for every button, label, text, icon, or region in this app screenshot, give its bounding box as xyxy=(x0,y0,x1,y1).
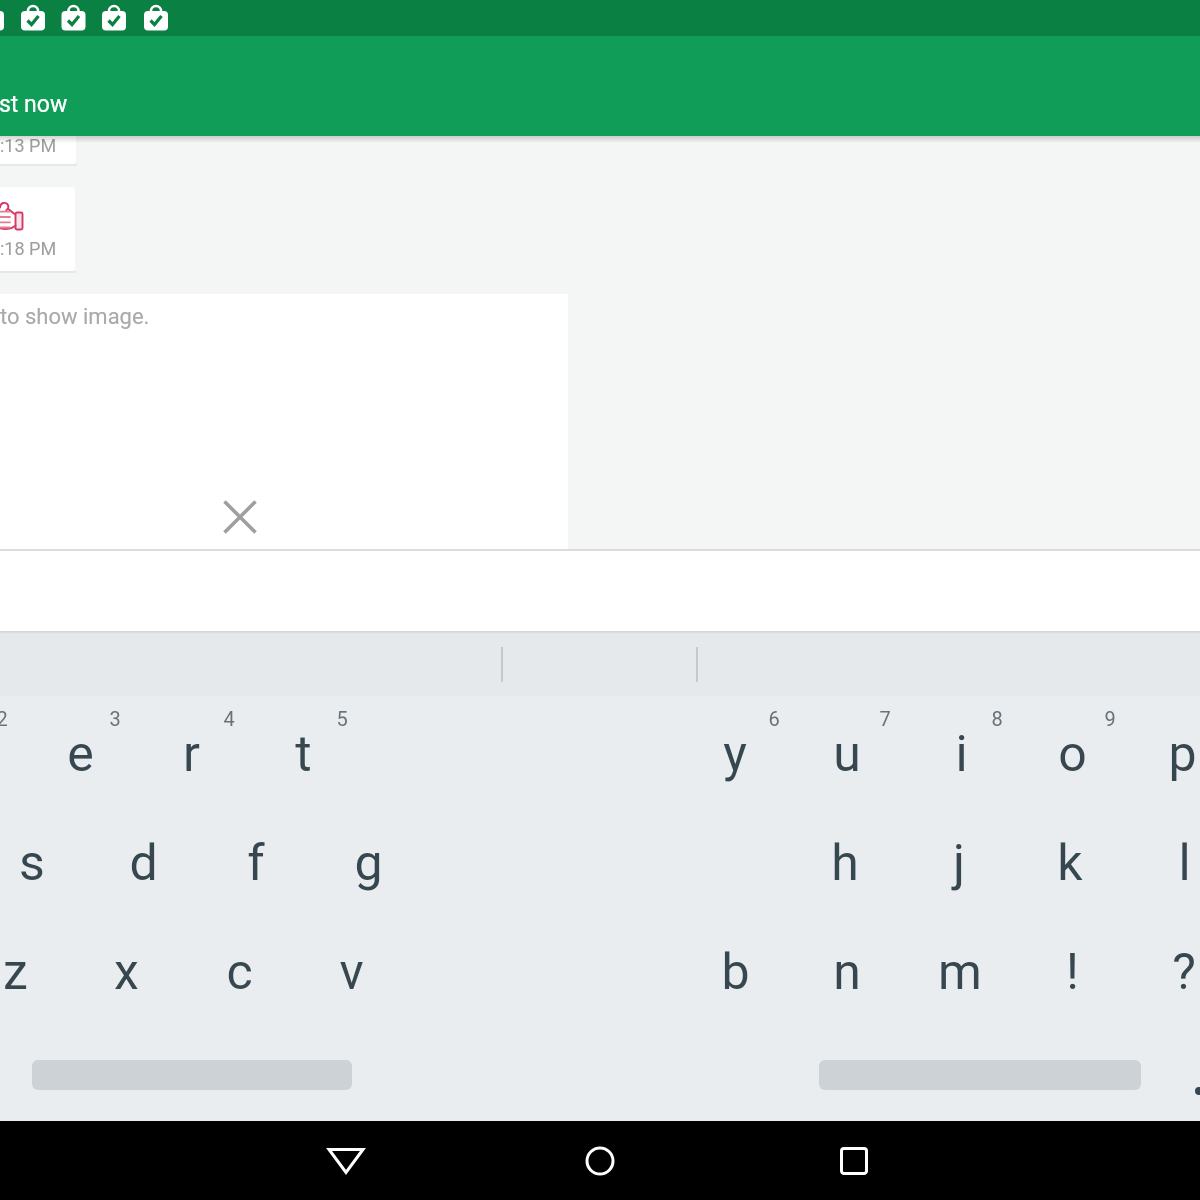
button[interactable]: x xyxy=(70,943,182,1005)
button[interactable]: o xyxy=(1016,725,1128,787)
staticText: o xyxy=(1058,725,1087,784)
button[interactable]: y xyxy=(679,725,791,787)
button[interactable]: b xyxy=(679,943,791,1005)
button[interactable]: v xyxy=(295,943,407,1005)
staticText: 3 xyxy=(109,707,121,730)
button[interactable]: j xyxy=(903,834,1015,896)
staticText: 5 xyxy=(336,707,348,730)
button[interactable]: 6 xyxy=(718,707,830,742)
button[interactable]: 4 xyxy=(173,707,285,742)
button[interactable] xyxy=(814,1121,894,1200)
button[interactable]: 2 xyxy=(0,707,58,742)
staticText: 6 xyxy=(768,707,780,730)
staticText: h xyxy=(831,834,859,893)
button[interactable]: 8 xyxy=(941,707,1053,742)
button[interactable] xyxy=(208,485,272,549)
staticText: t xyxy=(295,725,312,784)
staticText: x xyxy=(114,943,139,1002)
staticText: c xyxy=(226,943,253,1002)
button[interactable]: t xyxy=(247,725,359,787)
staticText: k xyxy=(1057,834,1083,893)
staticText: e xyxy=(67,725,94,784)
staticText: l xyxy=(1178,834,1191,893)
staticText: :18 PM xyxy=(0,238,57,259)
staticText: 7 xyxy=(879,707,891,730)
button[interactable]: 5 xyxy=(286,707,398,742)
button[interactable]: p xyxy=(1126,725,1200,787)
button[interactable]: i xyxy=(905,725,1017,787)
staticText: 2 xyxy=(0,707,8,730)
staticText: st now xyxy=(0,91,68,118)
staticText: :13 PM xyxy=(0,135,57,156)
button[interactable]: 9 xyxy=(1054,707,1166,742)
staticText: m xyxy=(938,943,982,1002)
button[interactable]: ? xyxy=(1128,943,1200,1005)
staticText: 9 xyxy=(1104,707,1116,730)
button[interactable]: ! xyxy=(1016,943,1128,1005)
button[interactable] xyxy=(0,294,568,551)
button[interactable]: u xyxy=(791,725,903,787)
button[interactable]: z xyxy=(0,943,71,1005)
button[interactable] xyxy=(306,1121,386,1200)
button[interactable]: g xyxy=(312,834,424,896)
staticText: to show image. xyxy=(0,304,150,330)
button[interactable] xyxy=(0,136,76,164)
staticText: v xyxy=(339,943,364,1002)
button[interactable]: k xyxy=(1014,834,1126,896)
staticText: ! xyxy=(1066,943,1079,1002)
staticText: 4 xyxy=(223,707,235,730)
button[interactable]: e xyxy=(24,725,136,787)
staticText: n xyxy=(833,943,861,1002)
button[interactable]: m xyxy=(904,943,1016,1005)
button[interactable] xyxy=(0,187,75,271)
button[interactable]: l xyxy=(1128,834,1200,896)
staticText: d xyxy=(129,834,158,893)
staticText: b xyxy=(721,943,750,1002)
button[interactable] xyxy=(0,631,1200,696)
button[interactable]: f xyxy=(200,834,312,896)
staticText: g xyxy=(354,834,383,893)
staticText: r xyxy=(183,725,200,784)
staticText: p xyxy=(1168,725,1197,784)
button[interactable]: c xyxy=(183,943,295,1005)
button[interactable]: st now xyxy=(0,36,1200,136)
staticText: f xyxy=(247,834,265,893)
button[interactable]: n xyxy=(791,943,903,1005)
staticText: y xyxy=(723,725,747,784)
staticText: i xyxy=(955,725,968,784)
button[interactable]: r xyxy=(135,725,247,787)
button[interactable]: s xyxy=(0,834,88,896)
button[interactable]: d xyxy=(87,834,199,896)
staticText: 8 xyxy=(991,707,1003,730)
button[interactable]: 3 xyxy=(59,707,171,742)
button[interactable]: h xyxy=(789,834,901,896)
staticText: u xyxy=(833,725,861,784)
staticText: ? xyxy=(1172,943,1196,1002)
staticText: s xyxy=(19,834,45,893)
staticText: j xyxy=(953,834,965,893)
button[interactable] xyxy=(560,1121,640,1200)
button[interactable]: 7 xyxy=(829,707,941,742)
staticText: z xyxy=(3,943,28,1002)
